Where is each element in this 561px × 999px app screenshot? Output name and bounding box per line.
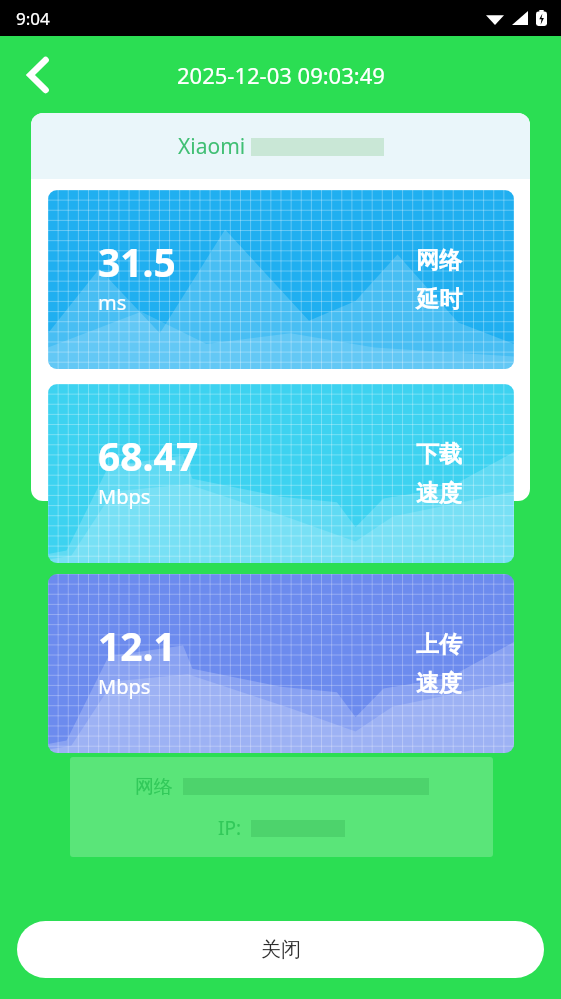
staticText: 关闭	[261, 937, 301, 962]
staticText: 9:04	[16, 7, 50, 30]
staticText: 68.47	[98, 429, 199, 482]
staticText: 2025-12-03 09:03:49	[177, 60, 385, 90]
staticText: 网络	[135, 773, 183, 799]
staticText: ms	[98, 289, 127, 316]
button[interactable]: 68.47	[48, 384, 514, 563]
staticText: 上传	[416, 630, 462, 659]
staticText: 网络	[416, 246, 462, 275]
button[interactable]: 12.1	[48, 574, 514, 753]
button[interactable]: Back	[14, 51, 62, 99]
staticText: 速度	[416, 479, 462, 508]
staticText: IP:	[218, 815, 251, 841]
staticText: 延时	[416, 285, 462, 314]
staticText: 12.1	[98, 619, 176, 672]
staticText: 下载	[416, 440, 462, 469]
button[interactable]: 关闭	[17, 921, 544, 978]
staticText: Mbps	[98, 483, 151, 510]
staticText: Xiaomi	[178, 132, 251, 161]
staticText: 31.5	[98, 235, 176, 288]
button[interactable]: 31.5	[48, 190, 514, 369]
staticText: 速度	[416, 669, 462, 698]
staticText: Mbps	[98, 673, 151, 700]
